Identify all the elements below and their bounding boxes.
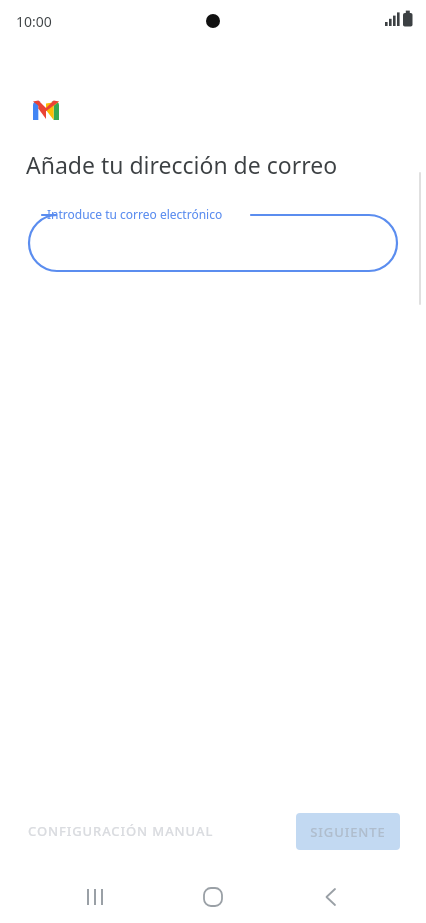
button[interactable]: Recents bbox=[71, 873, 119, 921]
button[interactable]: SIGUIENTE bbox=[296, 813, 400, 850]
button[interactable]: Introduce tu correo electrónico bbox=[28, 206, 398, 280]
staticText: 10:00 bbox=[16, 12, 52, 31]
button[interactable]: Back bbox=[307, 873, 355, 921]
staticText: CONFIGURACIÓN MANUAL bbox=[28, 822, 214, 840]
staticText: SIGUIENTE bbox=[310, 823, 386, 841]
button[interactable]: Home bbox=[189, 873, 237, 921]
staticText: Introduce tu correo electrónico bbox=[47, 206, 223, 222]
staticText: Añade tu dirección de correo bbox=[26, 149, 338, 180]
button[interactable]: CONFIGURACIÓN MANUAL bbox=[16, 812, 226, 850]
